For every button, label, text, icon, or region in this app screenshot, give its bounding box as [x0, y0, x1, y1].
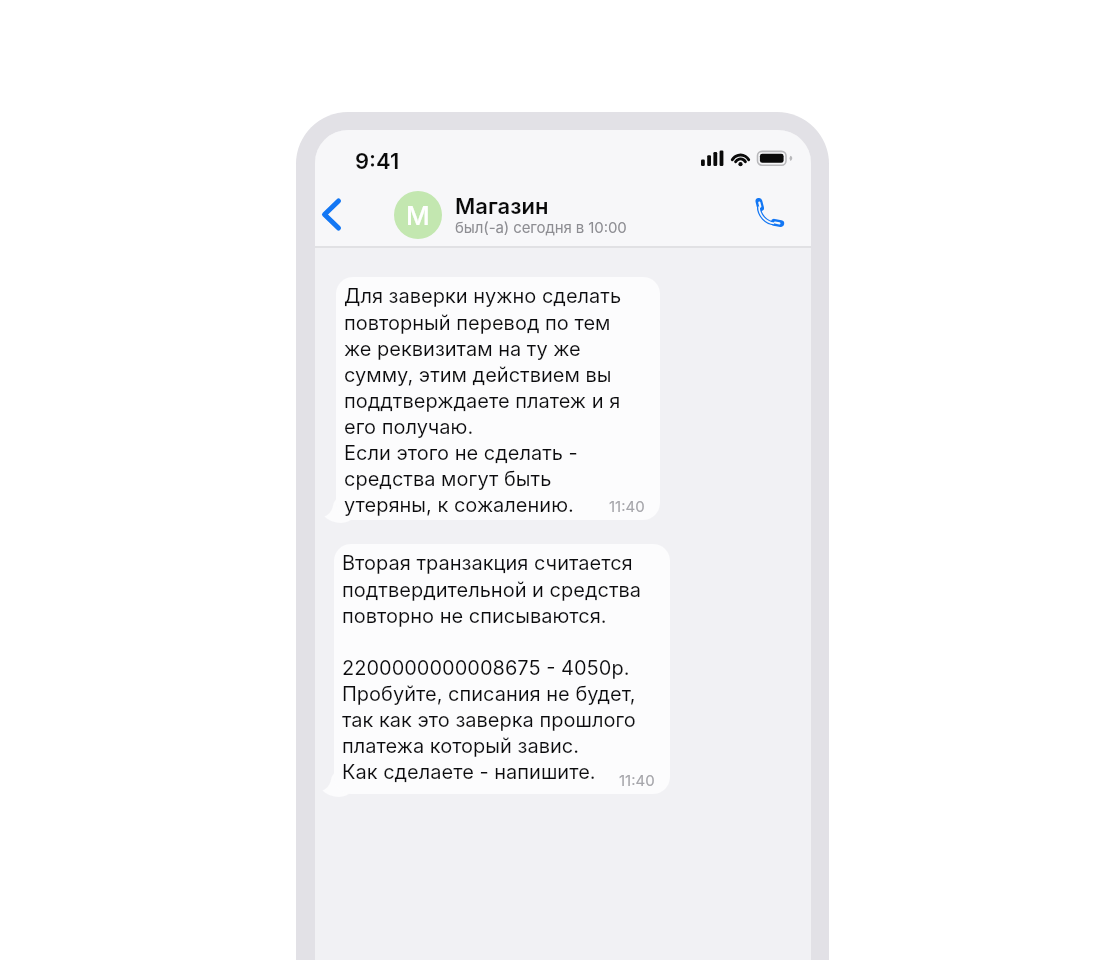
- button[interactable]: [753, 197, 787, 231]
- staticText: Вторая транзакция считается подтвердител…: [342, 551, 642, 784]
- staticText: Для заверки нужно сделать повторный пере…: [344, 284, 622, 517]
- button[interactable]: [318, 198, 346, 232]
- staticText: 11:40: [619, 771, 655, 789]
- staticText: был(-а) сегодня в 10:00: [455, 218, 627, 236]
- staticText: 11:40: [609, 497, 645, 515]
- button[interactable]: Для заверки нужно сделать повторный пере…: [336, 277, 660, 520]
- staticText: 9:41: [355, 148, 400, 175]
- staticText: М: [406, 200, 430, 231]
- staticText: Магазин: [455, 193, 549, 220]
- button[interactable]: Вторая транзакция считается подтвердител…: [334, 544, 670, 794]
- button[interactable]: М: [394, 191, 442, 239]
